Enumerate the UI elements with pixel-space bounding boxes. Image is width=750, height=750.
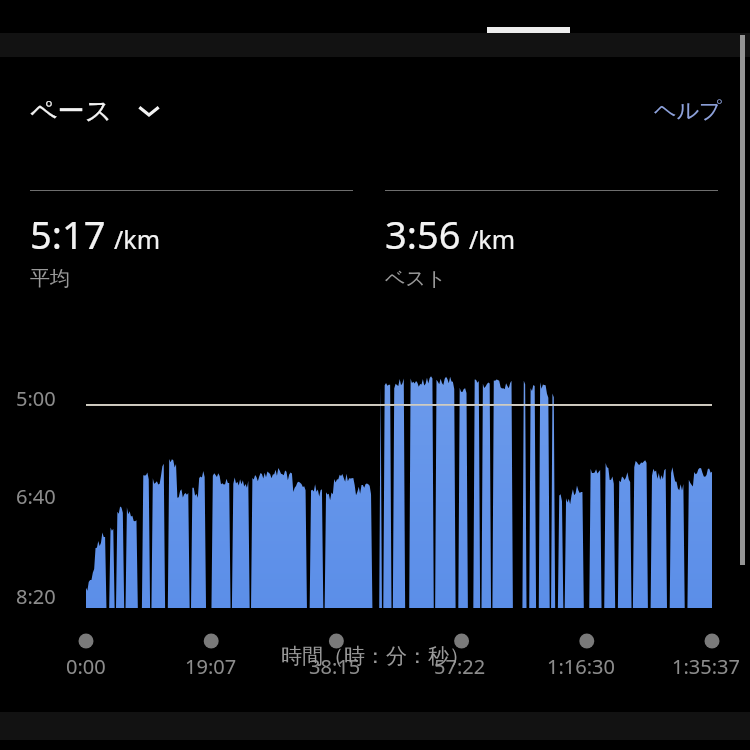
staticText: ベスト xyxy=(385,266,447,291)
staticText: 5:17 xyxy=(30,208,106,260)
staticText: 0:00 xyxy=(66,653,106,680)
staticText: /km xyxy=(469,222,516,256)
button[interactable]: 5:17 xyxy=(30,190,353,291)
staticText: 6:40 xyxy=(16,483,56,510)
staticText: 8:20 xyxy=(16,583,56,610)
staticText: 57:22 xyxy=(434,653,486,680)
staticText: ペース xyxy=(30,94,113,128)
staticText: 19:07 xyxy=(185,653,237,680)
staticText: 3:56 xyxy=(385,208,461,260)
button[interactable]: ペース xyxy=(30,94,163,128)
staticText: 時間（時：分：秒） xyxy=(281,643,470,669)
staticText: 38:15 xyxy=(309,653,361,680)
staticText: /km xyxy=(114,222,161,256)
staticText: 平均 xyxy=(30,266,70,291)
staticText: 5:00 xyxy=(16,385,56,412)
staticText: 1:35:37 xyxy=(672,653,740,680)
button[interactable]: ヘルプ xyxy=(654,97,722,125)
button[interactable]: 3:56 xyxy=(385,190,718,291)
staticText: ヘルプ xyxy=(654,97,722,125)
staticText: 1:16:30 xyxy=(547,653,615,680)
